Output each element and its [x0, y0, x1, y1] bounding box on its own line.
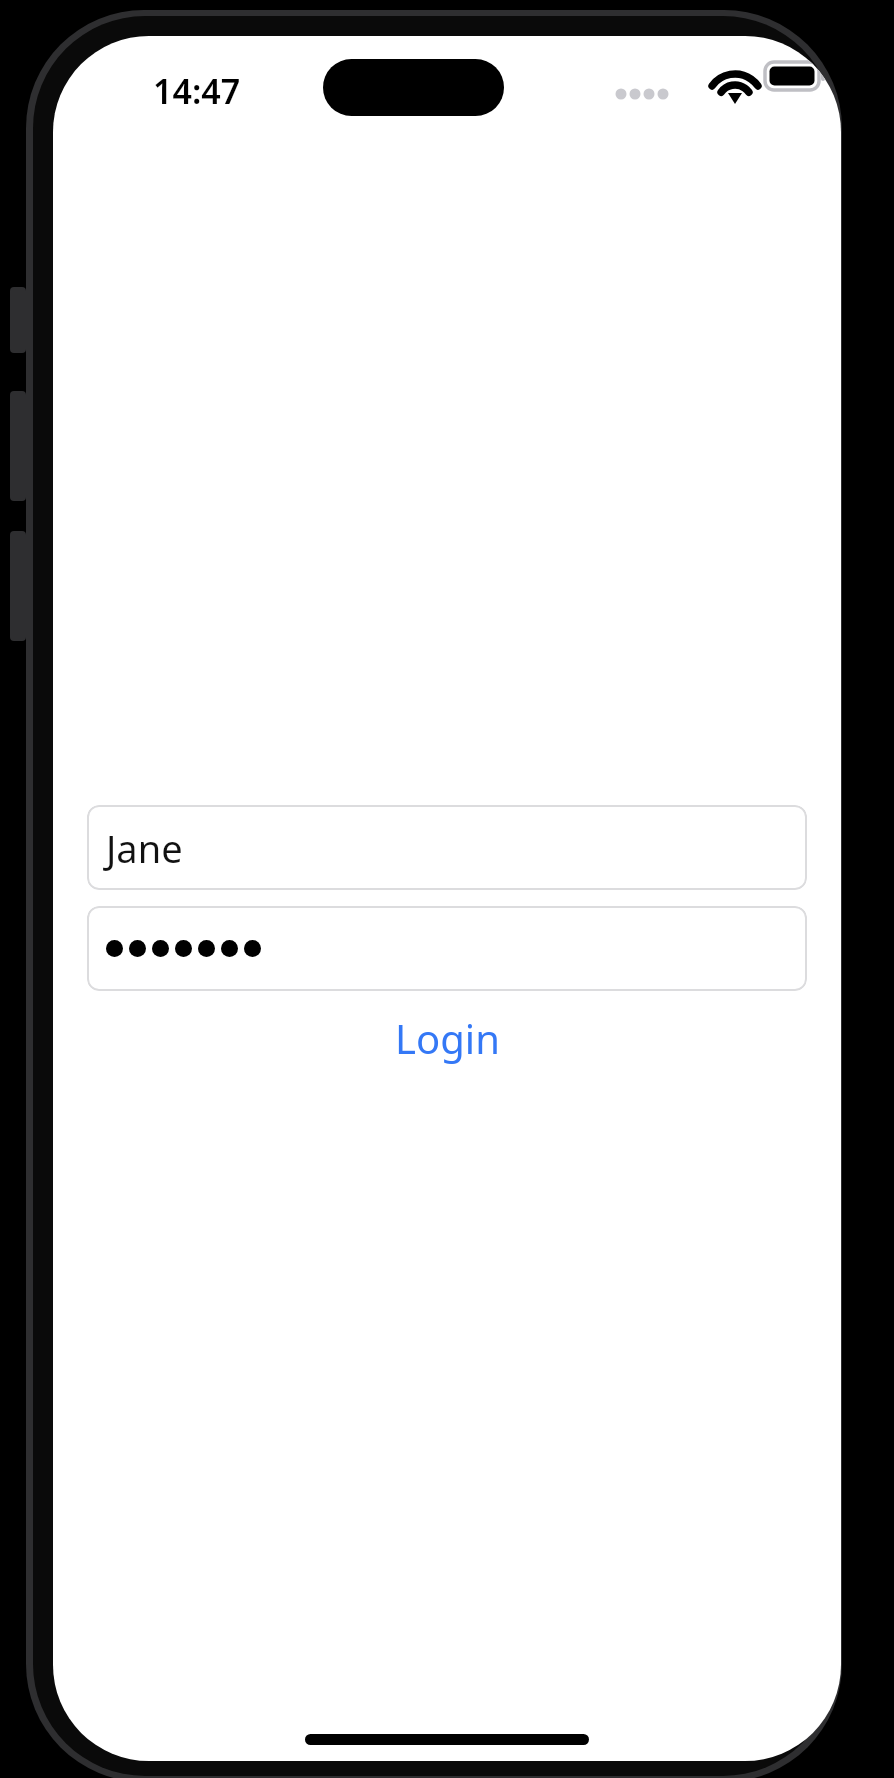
staticText: 14:47 [153, 68, 241, 114]
staticText: Login [395, 1011, 500, 1065]
staticText: Jane [106, 822, 183, 874]
button[interactable]: Password field [87, 906, 807, 991]
button[interactable]: Username field [87, 805, 807, 890]
button[interactable]: Login [87, 1007, 807, 1069]
